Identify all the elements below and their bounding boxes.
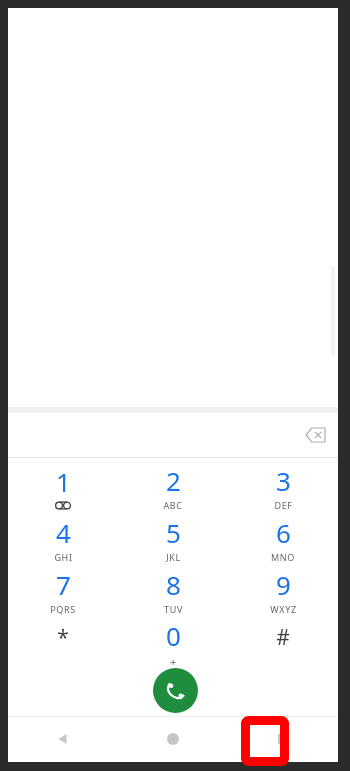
staticText: GHI [54,551,73,563]
staticText: MNO [271,551,295,563]
button[interactable]: Recent apps [241,716,289,766]
staticText: 0 [166,618,181,653]
staticText: 2 [166,463,181,498]
button[interactable]: # [228,617,338,669]
staticText: 3 [276,463,291,498]
staticText: 1 [56,464,71,499]
staticText: PQRS [50,603,76,615]
staticText: + [170,654,177,669]
button[interactable]: 9 [228,565,338,617]
button[interactable]: Backspace [298,418,332,452]
button[interactable]: * [8,617,118,669]
staticText: TUV [164,603,183,615]
button[interactable]: 2 [118,461,228,513]
button[interactable]: 7 [8,565,118,617]
staticText: DEF [274,499,293,511]
staticText: 4 [56,515,71,550]
staticText: * [57,623,69,652]
staticText: ABC [163,499,183,511]
button[interactable]: Home [118,716,228,762]
staticText: 6 [276,515,291,550]
button[interactable]: Call [153,668,198,713]
staticText: JKL [166,551,181,563]
button[interactable]: 8 [118,565,228,617]
staticText: 5 [166,515,181,550]
button[interactable]: 5 [118,513,228,565]
button[interactable]: 1 [8,461,118,513]
staticText: WXYZ [270,603,297,615]
button[interactable]: 0 [118,617,228,669]
staticText: 7 [56,567,71,602]
button[interactable]: 4 [8,513,118,565]
staticText: 9 [276,567,291,602]
staticText: # [276,623,290,652]
button[interactable]: 6 [228,513,338,565]
staticText: 8 [166,567,181,602]
button[interactable]: Back [8,716,118,762]
button[interactable]: 3 [228,461,338,513]
